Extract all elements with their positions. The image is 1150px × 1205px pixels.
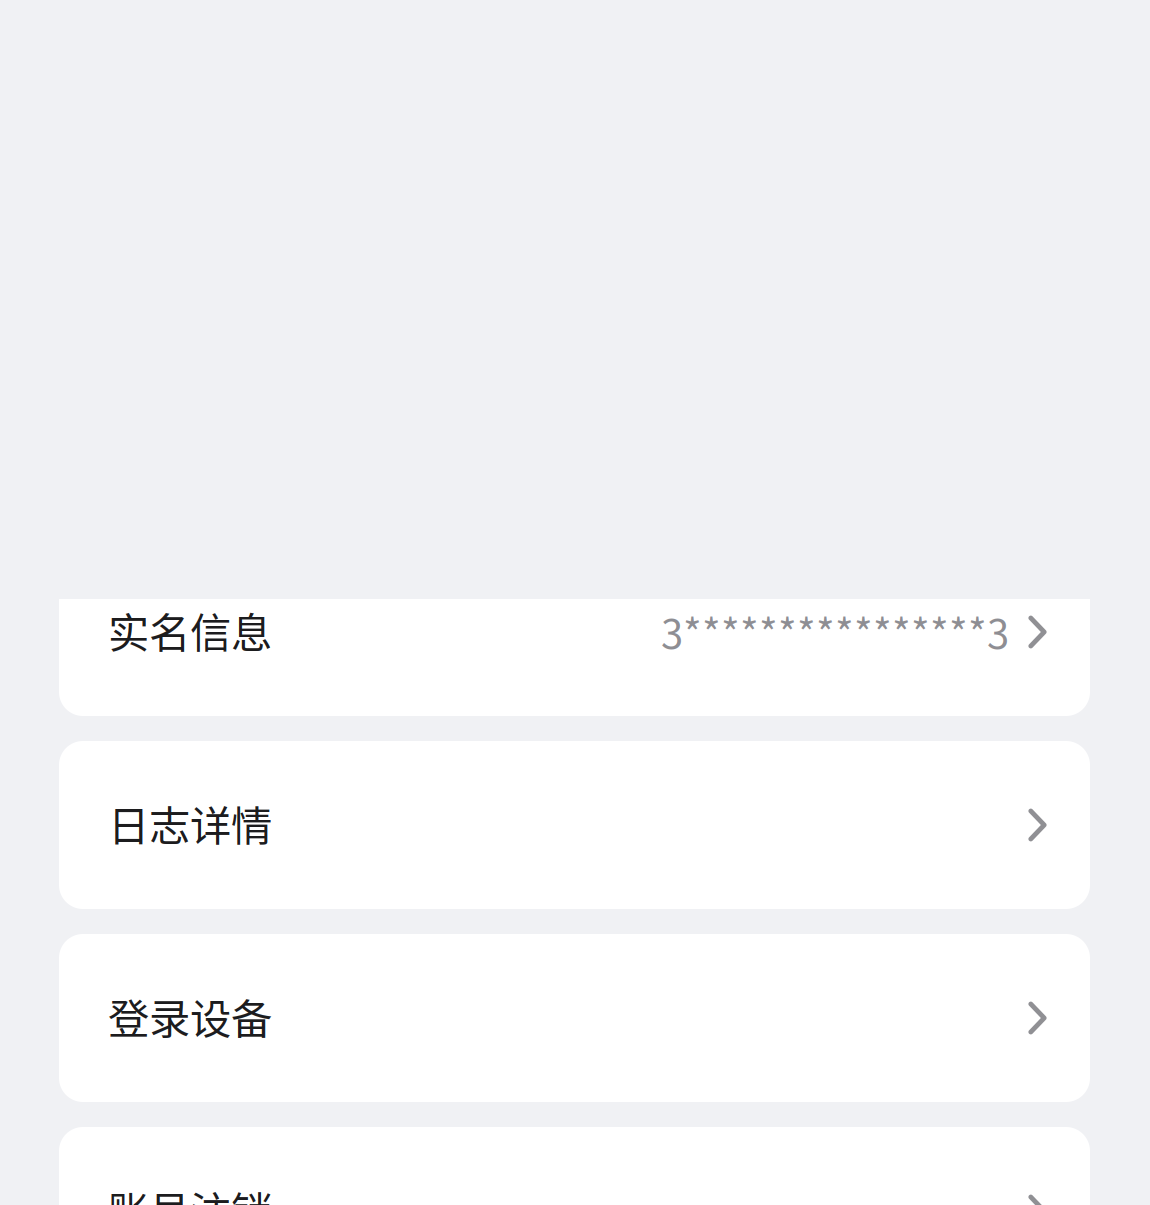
button[interactable]: 登录设备 xyxy=(59,934,1090,1102)
staticText: 日志详情 xyxy=(108,793,272,853)
staticText: 登录设备 xyxy=(108,986,272,1046)
button[interactable]: 账号注销 xyxy=(59,1127,1090,1205)
staticText: 账号注销 xyxy=(108,1179,272,1205)
staticText: 3****************3 xyxy=(661,602,1009,660)
button[interactable]: 实名信息 xyxy=(59,548,1090,716)
staticText: 实名信息 xyxy=(108,600,272,660)
button[interactable]: 日志详情 xyxy=(59,741,1090,909)
